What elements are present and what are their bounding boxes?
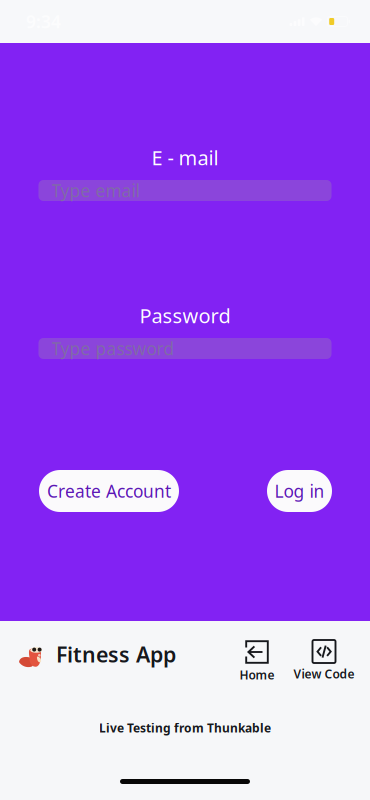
button[interactable]: Log in <box>267 470 332 512</box>
button[interactable]: Home <box>233 640 281 683</box>
staticText: View Code <box>293 666 354 682</box>
staticText: Create Account <box>47 479 171 502</box>
staticText: Live Testing from Thunkable <box>99 720 271 736</box>
button[interactable]: Type password <box>38 338 331 359</box>
staticText: Type email <box>51 179 139 202</box>
button[interactable]: View Code <box>293 640 355 682</box>
staticText: Type password <box>51 337 174 360</box>
staticText: E - mail <box>151 144 218 171</box>
staticText: Fitness App <box>56 640 176 668</box>
staticText: Home <box>239 667 274 683</box>
button[interactable]: Create Account <box>39 470 179 512</box>
staticText: Password <box>139 302 230 329</box>
button[interactable]: Type email <box>38 180 331 201</box>
staticText: Log in <box>274 479 324 502</box>
